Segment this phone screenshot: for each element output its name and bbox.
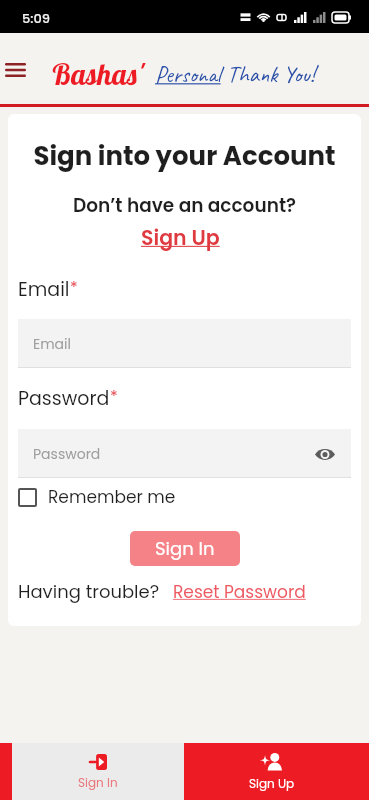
button[interactable]: Email: [18, 319, 351, 368]
staticText: *: [70, 276, 78, 298]
button[interactable]: Remember me: [18, 485, 184, 509]
button[interactable]: Sign In: [12, 743, 184, 800]
button[interactable]: Sign Up: [139, 223, 222, 252]
staticText: Password: [18, 385, 110, 412]
button[interactable]: Menu: [5, 63, 26, 77]
staticText: Bashas': [51, 56, 144, 92]
staticText: Remember me: [48, 485, 176, 509]
staticText: Sign Up: [249, 775, 295, 792]
button[interactable]: Sign Up: [184, 743, 369, 800]
staticText: 5:09: [22, 9, 51, 27]
button[interactable]: Show password: [313, 442, 337, 466]
button[interactable]: Password: [18, 429, 351, 478]
staticText: Personal: [155, 60, 221, 89]
staticText: *: [110, 385, 118, 407]
staticText: Thank You!: [227, 60, 315, 89]
staticText: Don’t have an account?: [18, 193, 351, 219]
staticText: Having trouble?: [18, 579, 160, 604]
staticText: Password: [33, 444, 101, 464]
staticText: Email: [18, 276, 70, 303]
staticText: Sign In: [155, 536, 215, 561]
staticText: Sign In: [78, 774, 118, 791]
button[interactable]: Sign In: [130, 531, 240, 566]
staticText: Sign into your Account: [18, 138, 351, 174]
staticText: Email: [33, 334, 71, 354]
button[interactable]: Reset Password: [173, 580, 306, 604]
